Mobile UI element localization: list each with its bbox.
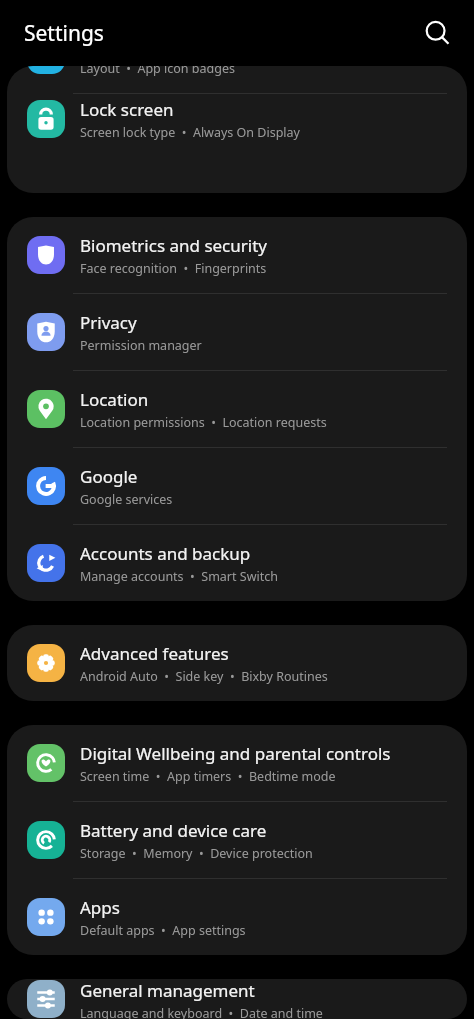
staticText: Layout • App icon badges (80, 66, 235, 77)
staticText: Permission manager (80, 337, 202, 354)
button[interactable]: General management (7, 979, 467, 1019)
staticText: Android Auto • Side key • Bixby Routines (80, 668, 328, 685)
button[interactable]: Apps (7, 879, 467, 955)
staticText: Screen time • App timers • Bedtime mode (80, 768, 336, 785)
button[interactable]: Digital Wellbeing and parental controls (7, 725, 467, 802)
button[interactable]: Battery and device care (7, 802, 467, 879)
staticText: Apps (80, 896, 120, 919)
button[interactable]: Privacy (7, 294, 467, 371)
staticText: Screen lock type • Always On Display (80, 124, 300, 141)
staticText: Default apps • App settings (80, 922, 246, 939)
staticText: Settings (24, 19, 104, 48)
staticText: Battery and device care (80, 819, 267, 842)
button[interactable]: Google (7, 448, 467, 525)
staticText: General management (80, 979, 255, 1002)
button[interactable]: Accounts and backup (7, 525, 467, 601)
staticText: Face recognition • Fingerprints (80, 260, 267, 277)
staticText: Biometrics and security (80, 234, 267, 257)
staticText: Google (80, 465, 138, 488)
button[interactable]: Location (7, 371, 467, 448)
staticText: Digital Wellbeing and parental controls (80, 742, 391, 765)
button[interactable]: Advanced features (7, 625, 467, 701)
staticText: Advanced features (80, 642, 229, 665)
staticText: Location (80, 388, 149, 411)
button[interactable]: Home screen (7, 66, 467, 94)
button[interactable]: Lock screen (7, 94, 467, 144)
staticText: Location permissions • Location requests (80, 414, 327, 431)
staticText: Language and keyboard • Date and time (80, 1005, 323, 1019)
staticText: Manage accounts • Smart Switch (80, 568, 278, 585)
button[interactable]: Biometrics and security (7, 217, 467, 294)
button[interactable]: Search (413, 9, 461, 57)
staticText: Accounts and backup (80, 542, 251, 565)
staticText: Storage • Memory • Device protection (80, 845, 313, 862)
staticText: Google services (80, 491, 173, 508)
staticText: Lock screen (80, 98, 174, 121)
staticText: Privacy (80, 311, 137, 334)
